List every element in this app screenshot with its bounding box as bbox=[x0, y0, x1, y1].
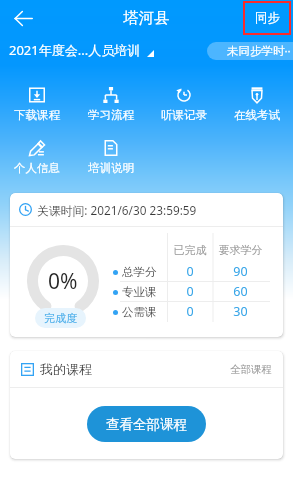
staticText: 听课记录 bbox=[161, 108, 207, 122]
button[interactable]: 查看全部课程 bbox=[87, 406, 206, 442]
staticText: 在线考试 bbox=[234, 108, 280, 122]
button[interactable]: 个人信息 bbox=[0, 131, 74, 184]
staticText: 30 bbox=[213, 303, 268, 320]
staticText: 全部课程 bbox=[230, 363, 272, 376]
staticText: 0 bbox=[167, 263, 213, 280]
staticText: 已完成 bbox=[167, 243, 213, 257]
button[interactable]: Back bbox=[0, 0, 46, 36]
button[interactable]: 同步 bbox=[243, 1, 291, 35]
staticText: 90 bbox=[213, 263, 268, 280]
button[interactable]: 在线考试 bbox=[220, 78, 293, 131]
button[interactable]: 未同步学时·· bbox=[207, 42, 293, 60]
staticText: 下载课程 bbox=[14, 108, 60, 122]
staticText: 塔河县 bbox=[123, 8, 170, 28]
staticText: 我的课程 bbox=[40, 361, 92, 377]
button[interactable]: 下载课程 bbox=[0, 78, 74, 131]
staticText: 关课时间: 2021/6/30 23:59:59 bbox=[37, 202, 197, 218]
button[interactable]: 培训说明 bbox=[74, 131, 147, 184]
staticText: 公需课 bbox=[122, 305, 157, 319]
staticText: 个人信息 bbox=[14, 161, 60, 175]
staticText: 总学分 bbox=[122, 265, 157, 279]
staticText: 同步 bbox=[255, 10, 280, 26]
staticText: 2021年度会...人员培训 bbox=[9, 41, 141, 59]
button[interactable]: 2021年度会...人员培训 bbox=[9, 41, 154, 59]
staticText: 查看全部课程 bbox=[106, 416, 187, 433]
staticText: 要求学分 bbox=[213, 243, 268, 257]
staticText: 学习流程 bbox=[88, 108, 134, 122]
button[interactable]: 全部课程 bbox=[230, 363, 272, 376]
staticText: 未同步学时·· bbox=[227, 43, 291, 59]
staticText: 完成度 bbox=[44, 311, 77, 325]
staticText: 0 bbox=[167, 303, 213, 320]
staticText: 0% bbox=[48, 267, 78, 296]
staticText: 培训说明 bbox=[88, 161, 134, 175]
staticText: 专业课 bbox=[122, 285, 157, 299]
staticText: 60 bbox=[213, 283, 268, 300]
staticText: 0 bbox=[167, 283, 213, 300]
button[interactable]: 学习流程 bbox=[74, 78, 147, 131]
button[interactable]: 听课记录 bbox=[147, 78, 220, 131]
